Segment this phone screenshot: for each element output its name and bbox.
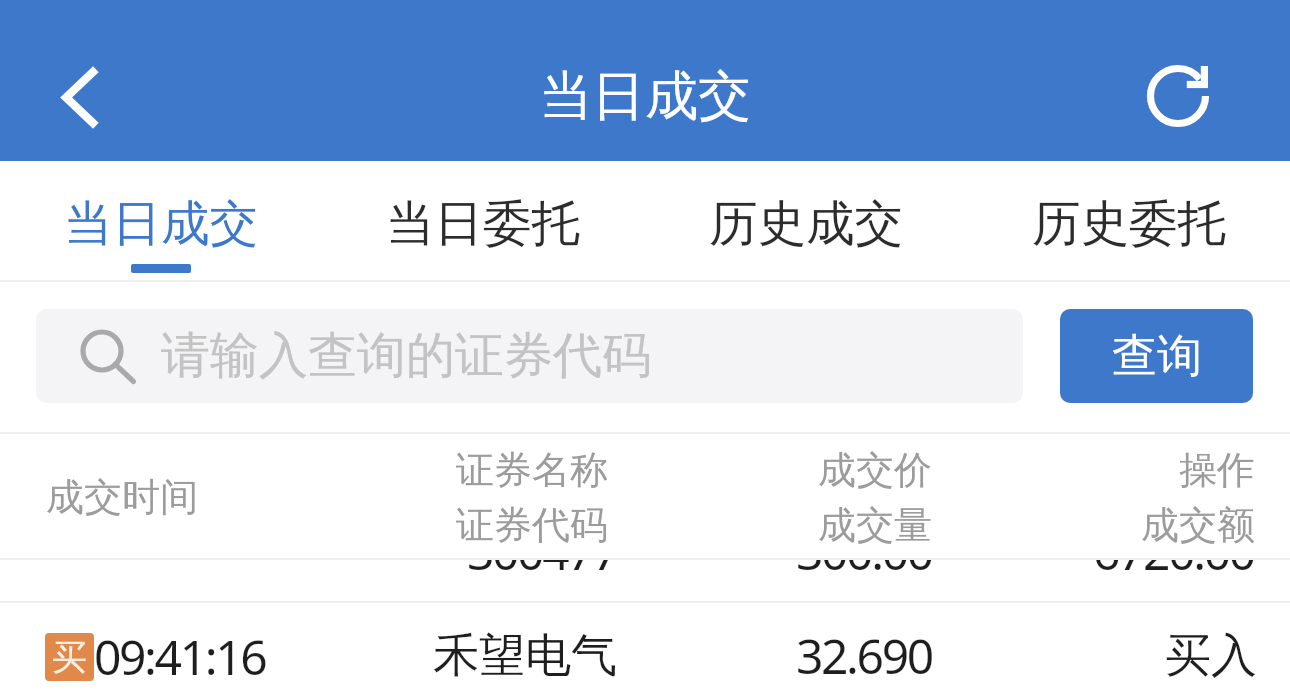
staticText: 买	[52, 442, 87, 486]
button[interactable]: 买	[0, 434, 1290, 609]
button[interactable]: 历史委托	[967, 161, 1290, 222]
button[interactable]: 历史成交	[644, 161, 967, 222]
staticText: 32.690	[796, 623, 932, 688]
button[interactable]: Refresh	[1118, 36, 1238, 156]
button[interactable]: Back	[19, 37, 139, 157]
staticText: 300.00	[796, 519, 932, 584]
button[interactable]: 当日委托	[322, 161, 644, 222]
button[interactable]: 当日成交	[0, 161, 322, 222]
staticText: 华明装备	[433, 434, 617, 492]
staticText: 请输入查询的证券代码	[161, 325, 651, 387]
staticText: 操作	[1179, 446, 1255, 494]
button[interactable]: 查询	[1060, 309, 1253, 403]
staticText: 成交额	[1141, 501, 1255, 549]
staticText: 历史成交	[709, 193, 903, 254]
button[interactable]: 请输入查询的证券代码	[36, 309, 1023, 403]
staticText: 查询	[1112, 328, 1202, 385]
staticText: 禾望电气	[433, 627, 617, 685]
staticText: 6720.00	[1093, 519, 1254, 584]
staticText: 09:40:55	[94, 434, 266, 496]
staticText: 成交量	[818, 501, 932, 549]
button[interactable]: 买	[0, 602, 1290, 698]
staticText: 证券代码	[456, 501, 608, 549]
staticText: 买入	[1165, 627, 1257, 685]
staticText: 33.000	[796, 434, 932, 495]
staticText: 当日委托	[386, 193, 580, 254]
staticText: 历史委托	[1032, 193, 1226, 254]
staticText: 当日成交	[539, 63, 751, 130]
staticText: 买	[52, 635, 87, 679]
staticText: 09:41:16	[94, 624, 266, 689]
staticText: 当日成交	[64, 193, 258, 254]
staticText: 证券名称	[456, 446, 608, 494]
staticText: 300477	[467, 519, 618, 584]
staticText: 成交时间	[46, 473, 198, 521]
staticText: 买入	[1165, 434, 1257, 492]
staticText: 成交价	[818, 446, 932, 494]
